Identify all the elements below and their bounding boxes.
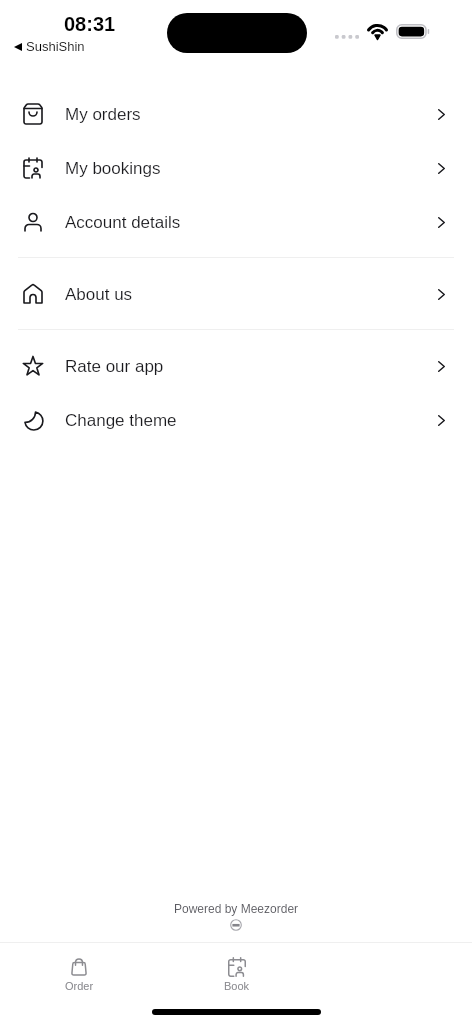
button[interactable]: Rate our app (0, 339, 472, 393)
button[interactable]: My orders (0, 87, 472, 141)
button[interactable]: My bookings (0, 141, 472, 195)
staticText: Book (224, 980, 250, 992)
button[interactable]: Order (0, 943, 158, 995)
button[interactable]: Change theme (0, 393, 472, 447)
staticText: SushiShin (26, 39, 85, 54)
staticText: About us (65, 285, 133, 304)
staticText: Account details (65, 213, 181, 232)
staticText: Rate our app (65, 357, 164, 376)
staticText: Powered by Meezorder (174, 902, 299, 915)
button[interactable]: Back to SushiShin (14, 39, 85, 54)
button[interactable]: Book (158, 943, 315, 995)
staticText: My orders (65, 105, 141, 124)
staticText: 08:31 (64, 13, 116, 35)
staticText: Change theme (65, 411, 177, 430)
button[interactable]: Account details (0, 195, 472, 249)
staticText: Order (65, 980, 94, 992)
staticText: My bookings (65, 159, 161, 178)
button[interactable]: About us (0, 267, 472, 321)
